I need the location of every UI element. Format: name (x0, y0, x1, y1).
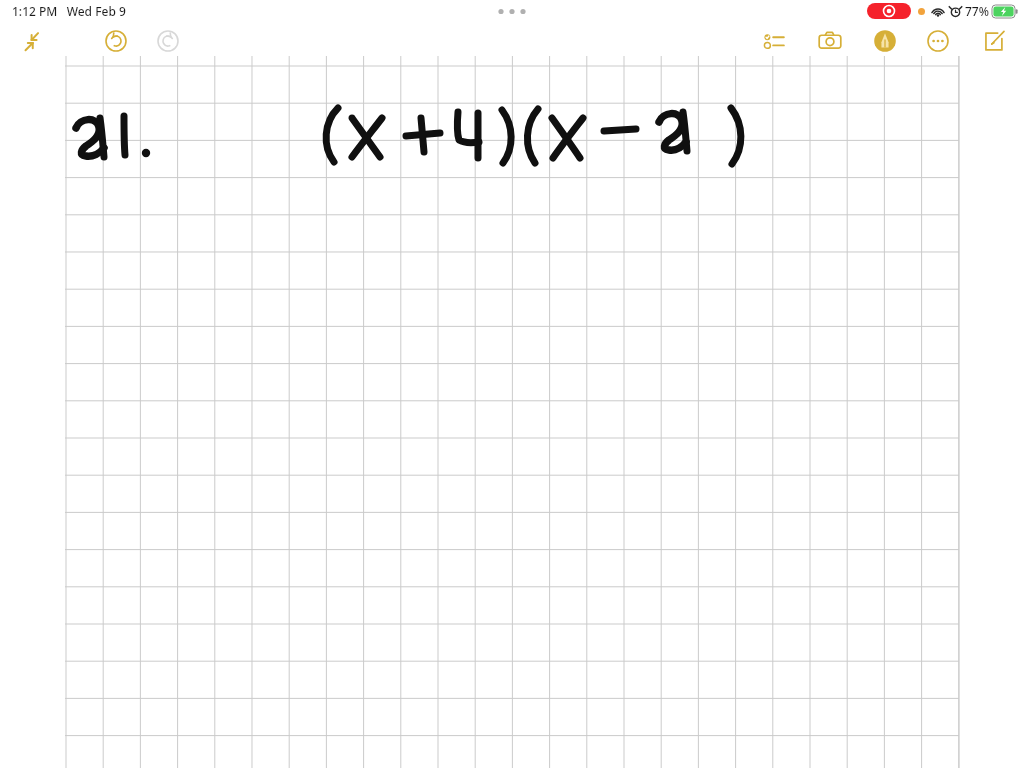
button[interactable]: New note (977, 25, 1009, 57)
button[interactable]: Undo (100, 25, 132, 57)
staticText: 77% (965, 3, 989, 19)
button[interactable]: Collapse (18, 26, 48, 56)
staticText: 1:12 PM Wed Feb 9 (12, 3, 126, 19)
button[interactable]: Checklist (758, 25, 790, 57)
button[interactable]: Markup pen (869, 25, 901, 57)
button[interactable]: Redo (152, 25, 184, 57)
button[interactable]: Camera (814, 25, 846, 57)
button[interactable]: More options (922, 25, 954, 57)
